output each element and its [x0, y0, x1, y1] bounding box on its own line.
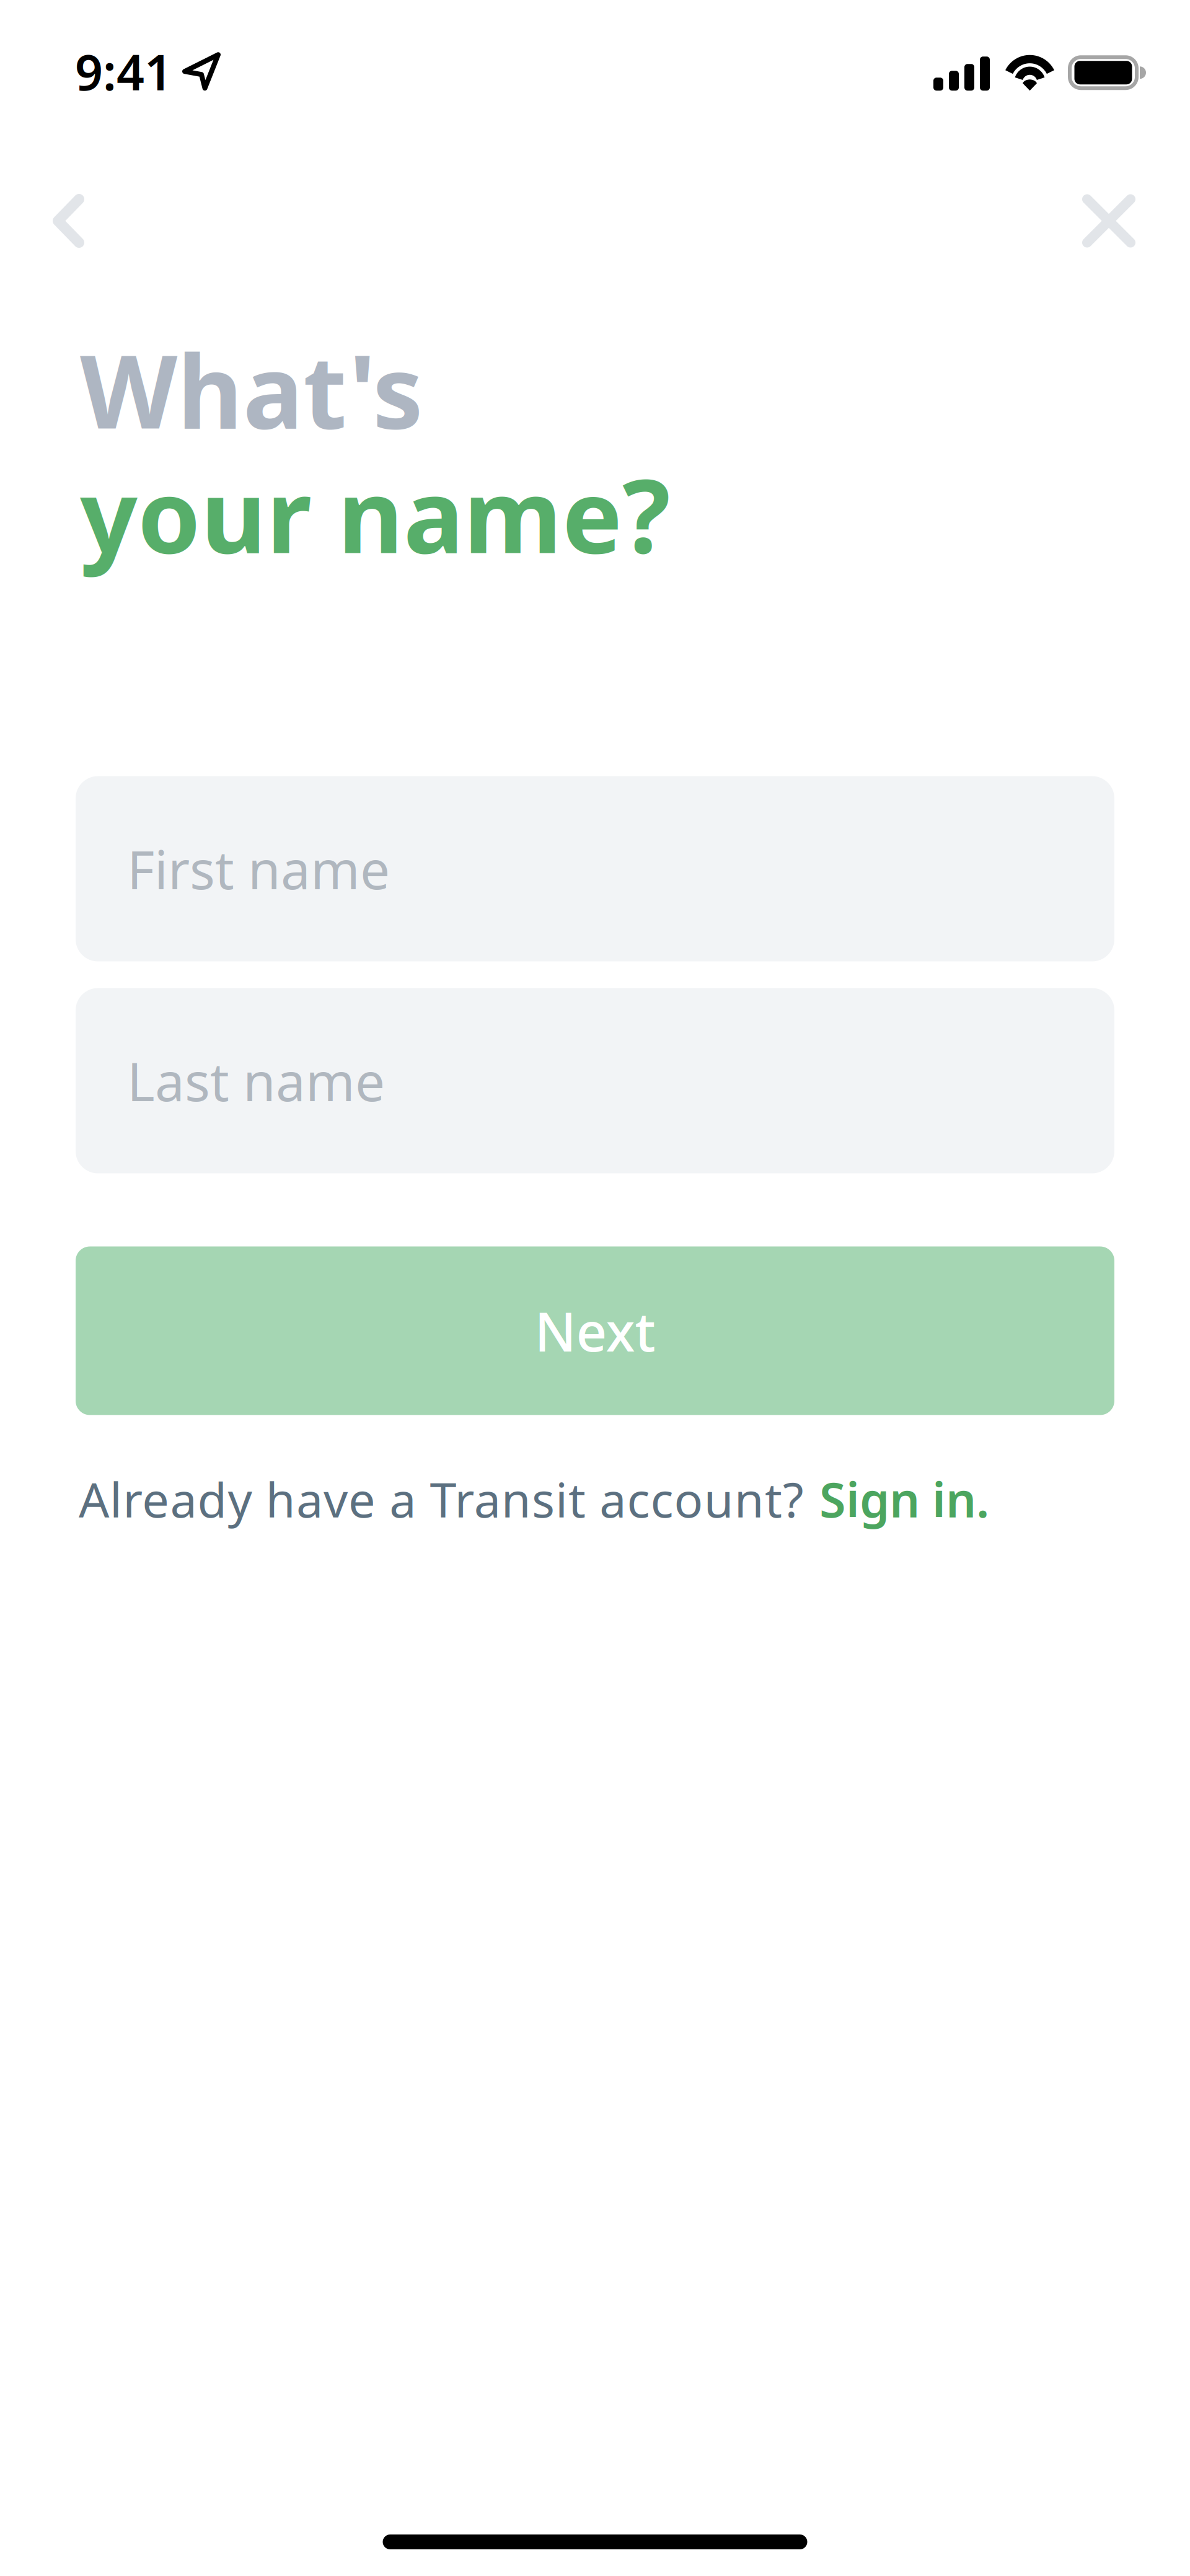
button[interactable]: Back	[0, 181, 146, 261]
button[interactable]: Close	[1042, 181, 1190, 261]
staticText: Last name	[127, 1046, 385, 1116]
button[interactable]: Last name	[76, 988, 1114, 1173]
staticText: your name?	[80, 447, 671, 581]
staticText: First name	[127, 834, 390, 904]
staticText: Sign in.	[819, 1467, 989, 1531]
staticText: Already have a Transit account?	[79, 1467, 804, 1531]
button[interactable]: Sign in.	[819, 1467, 989, 1531]
staticText: 9:41	[75, 39, 172, 104]
staticText: Next	[535, 1295, 655, 1366]
staticText: What's	[80, 323, 423, 456]
button[interactable]: First name	[76, 776, 1114, 961]
button[interactable]: Next	[76, 1246, 1114, 1415]
